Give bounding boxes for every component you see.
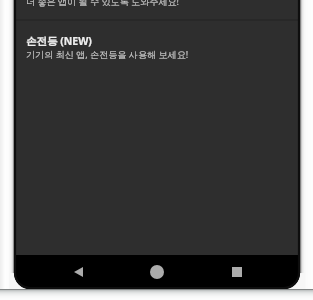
staticText: 손전등 (NEW) (26, 34, 92, 48)
button[interactable]: Recents (223, 255, 251, 289)
staticText: 기기의 최신 앱, 손전등을 사용해 보세요! (26, 48, 189, 60)
button[interactable]: 손전등 (NEW) (14, 21, 300, 72)
staticText: 더 좋은 앱이 될 수 있도록 도와주세요! (26, 0, 180, 7)
button[interactable]: Back (64, 255, 92, 289)
button[interactable]: Home (143, 255, 171, 289)
